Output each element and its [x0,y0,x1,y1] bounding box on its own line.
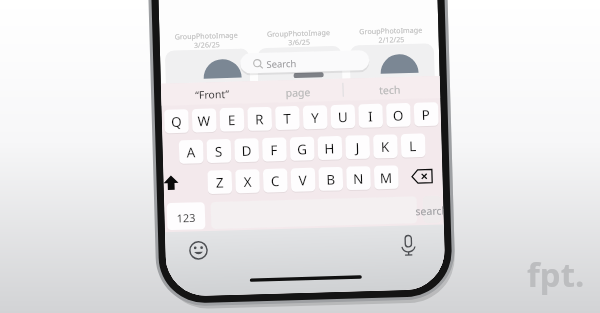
button[interactable]: iPhone keyboard screen [0,0,600,313]
